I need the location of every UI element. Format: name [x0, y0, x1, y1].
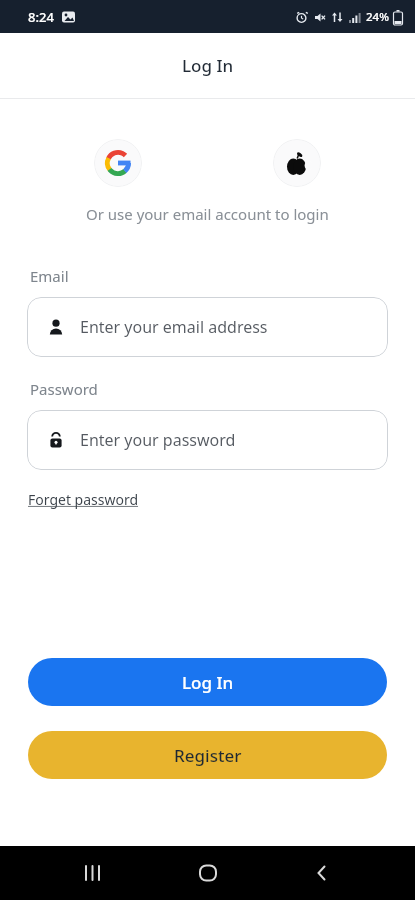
- button[interactable]: Register: [28, 731, 387, 779]
- staticText: Or use your email account to login: [86, 204, 329, 224]
- staticText: 8:24: [28, 8, 54, 26]
- button[interactable]: Enter your password: [27, 410, 388, 470]
- button[interactable]: [84, 864, 102, 882]
- staticText: Email: [30, 266, 69, 286]
- button[interactable]: [94, 139, 142, 187]
- button[interactable]: Forget password: [28, 490, 139, 509]
- staticText: Register: [174, 744, 242, 767]
- staticText: Password: [30, 379, 98, 399]
- staticText: Enter your password: [80, 429, 236, 451]
- staticText: Log In: [182, 671, 234, 694]
- button[interactable]: Enter your email address: [27, 297, 388, 357]
- staticText: 24%: [366, 9, 389, 25]
- button[interactable]: [198, 863, 218, 883]
- button[interactable]: [273, 139, 321, 187]
- button[interactable]: Log In: [28, 658, 387, 706]
- staticText: Log In: [182, 54, 234, 77]
- button[interactable]: [313, 864, 331, 882]
- staticText: Enter your email address: [80, 316, 268, 338]
